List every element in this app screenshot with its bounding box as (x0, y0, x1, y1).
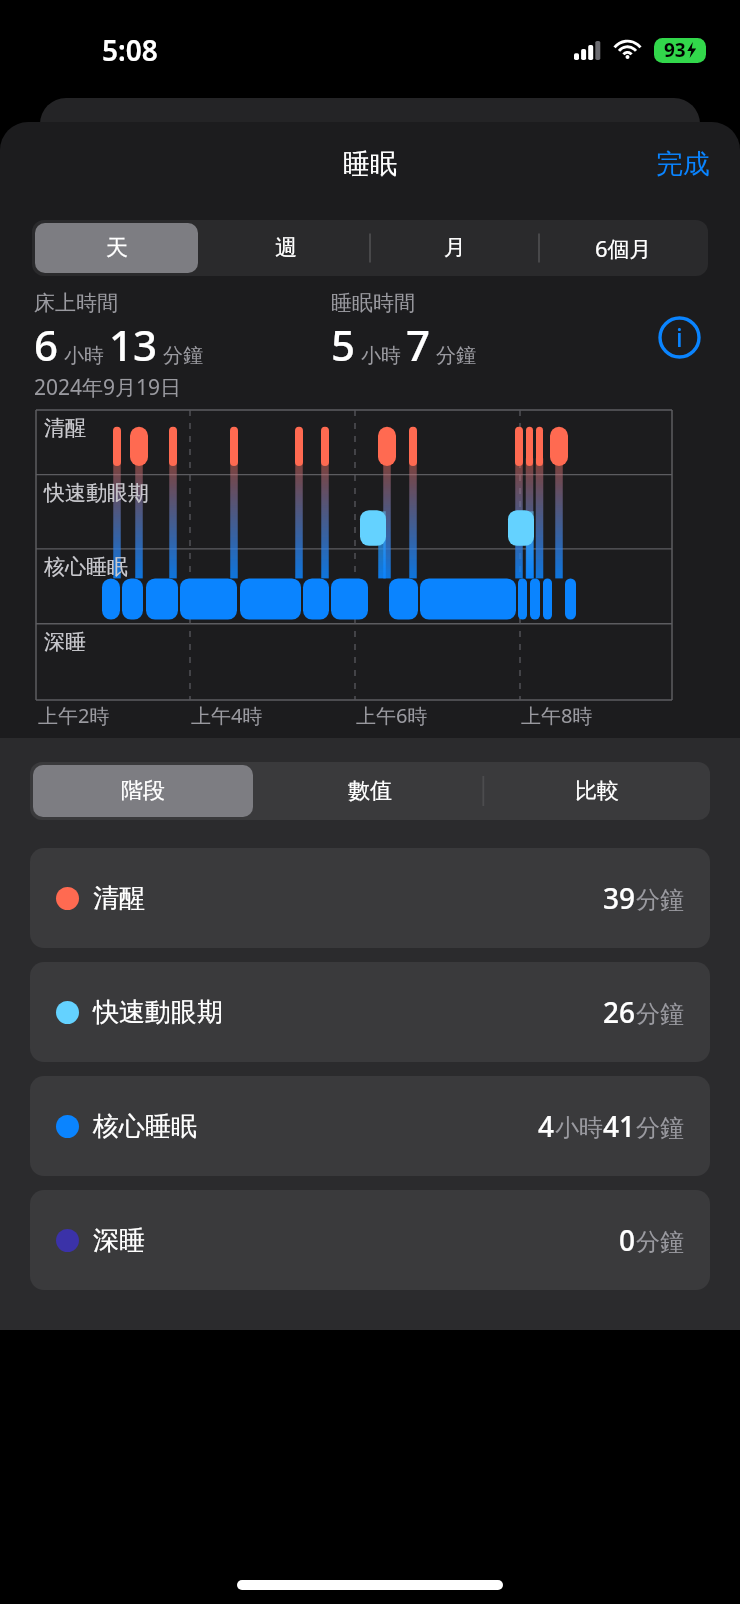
button[interactable]: 完成 (648, 141, 718, 187)
button[interactable]: 深睡 (30, 1190, 710, 1290)
button[interactable]: 週 (204, 223, 367, 273)
staticText: 分鐘 (436, 343, 476, 368)
staticText: 5 (331, 316, 356, 373)
staticText: 分鐘 (636, 885, 684, 915)
staticText: 快速動眼期 (44, 480, 149, 506)
staticText: 階段 (121, 777, 165, 805)
staticText: 2024年9月19日 (34, 373, 182, 402)
staticText: 月 (444, 234, 466, 262)
staticText: 深睡 (93, 1224, 145, 1257)
staticText: 天 (106, 234, 128, 262)
staticText: 41 (603, 1107, 636, 1145)
staticText: 小時 (361, 343, 401, 368)
staticText: 清醒 (93, 882, 145, 915)
staticText: 床上時間 (34, 290, 118, 316)
button[interactable]: 核心睡眠 (30, 1076, 710, 1176)
staticText: 6 (34, 316, 59, 373)
staticText: 分鐘 (636, 1113, 684, 1143)
button[interactable]: 階段 (33, 765, 253, 817)
staticText: i (676, 320, 683, 354)
staticText: 26 (603, 993, 636, 1031)
staticText: 分鐘 (163, 343, 203, 368)
staticText: 小時 (555, 1113, 603, 1143)
staticText: 上午6時 (356, 702, 428, 729)
staticText: 核心睡眠 (44, 554, 128, 580)
staticText: 上午8時 (521, 702, 593, 729)
staticText: 週 (275, 234, 297, 262)
button[interactable]: 清醒 (30, 848, 710, 948)
staticText: 13 (109, 316, 158, 373)
staticText: 39 (603, 879, 636, 917)
staticText: 快速動眼期 (93, 996, 223, 1029)
staticText: 上午4時 (191, 702, 263, 729)
staticText: 4 (538, 1107, 555, 1145)
staticText: 分鐘 (636, 999, 684, 1029)
staticText: 分鐘 (636, 1227, 684, 1257)
staticText: 7 (406, 316, 431, 373)
button[interactable]: 月 (373, 223, 536, 273)
staticText: 0 (619, 1221, 636, 1259)
staticText: 比較 (575, 777, 619, 805)
staticText: 上午2時 (38, 702, 110, 729)
button[interactable]: 6個月 (542, 223, 705, 273)
button[interactable]: 快速動眼期 (30, 962, 710, 1062)
staticText: 數值 (348, 777, 392, 805)
button[interactable]: 資訊 (652, 310, 706, 364)
staticText: 深睡 (44, 629, 86, 655)
button[interactable]: 天 (35, 223, 198, 273)
button[interactable]: 比較 (486, 765, 707, 817)
staticText: 完成 (656, 147, 710, 181)
staticText: 6個月 (595, 233, 652, 263)
button[interactable]: 數值 (259, 765, 480, 817)
staticText: 核心睡眠 (93, 1110, 197, 1143)
staticText: 93 (664, 37, 686, 63)
staticText: 睡眠時間 (331, 290, 415, 316)
staticText: 5:08 (102, 31, 158, 69)
staticText: 小時 (64, 343, 104, 368)
staticText: 睡眠 (343, 147, 397, 181)
staticText: 清醒 (44, 415, 86, 441)
